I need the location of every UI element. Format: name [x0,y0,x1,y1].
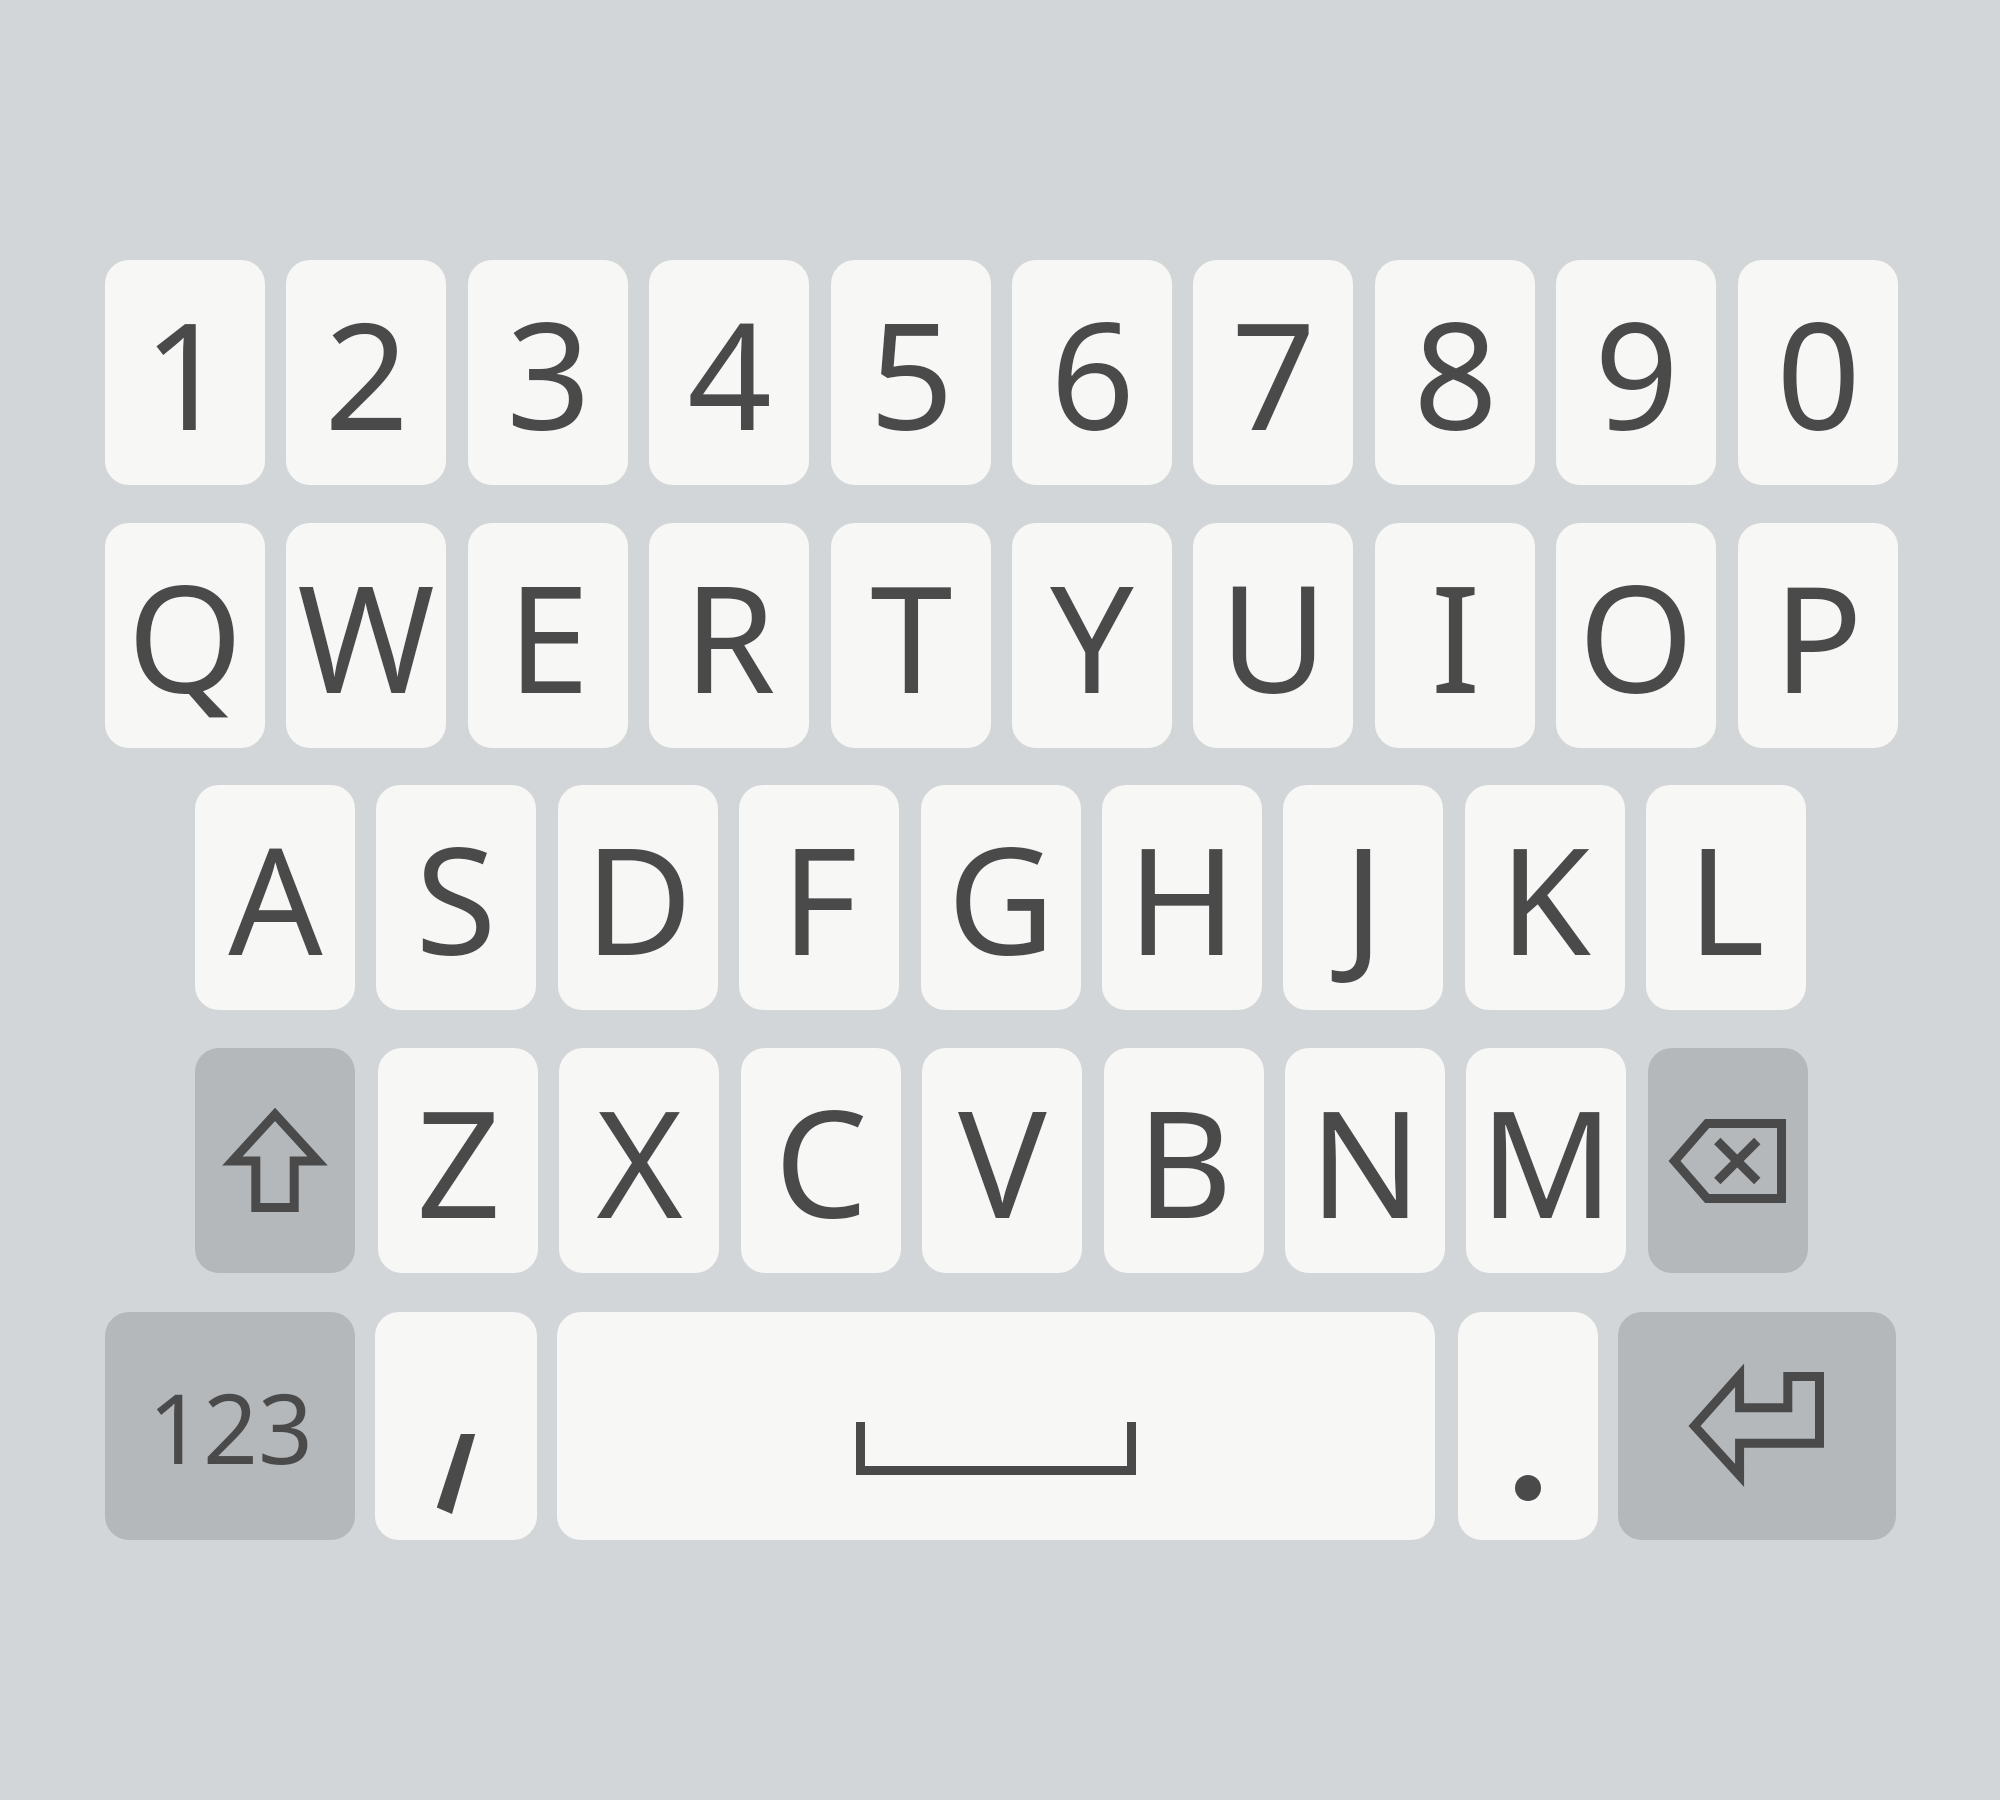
staticText: V [958,1060,1047,1262]
staticText: 123 [148,1361,313,1492]
button[interactable]: K [1465,785,1625,1010]
staticText: H [1127,797,1237,999]
staticText: 4 [687,272,772,474]
button[interactable]: T [831,523,991,748]
button[interactable]: Comma [375,1312,537,1540]
button[interactable]: 0 [1738,260,1898,485]
button[interactable]: I [1375,523,1535,748]
staticText: G [947,797,1055,999]
button[interactable]: Enter [1618,1312,1896,1540]
button[interactable]: 1 [105,260,265,485]
staticText: Y [1050,535,1134,737]
staticText: F [781,797,858,999]
button[interactable]: 123 [105,1312,355,1540]
staticText: U [1219,535,1328,737]
button[interactable]: J [1283,785,1443,1010]
button[interactable]: X [559,1048,719,1273]
staticText: 2 [324,272,409,474]
button[interactable]: 5 [831,260,991,485]
staticText: M [1479,1060,1614,1262]
button[interactable]: Q [105,523,265,748]
staticText: 5 [869,272,954,474]
staticText: K [1499,797,1591,999]
button[interactable]: 9 [1556,260,1716,485]
button[interactable]: Backspace [1648,1048,1808,1273]
staticText: N [1309,1060,1422,1262]
staticText: L [1687,797,1765,999]
button[interactable]: C [741,1048,901,1273]
staticText: Q [127,535,243,737]
staticText: 0 [1776,272,1861,474]
staticText: X [596,1060,683,1262]
staticText: 3 [506,272,591,474]
staticText: B [1136,1060,1233,1262]
staticText: 6 [1050,272,1135,474]
staticText: W [297,535,435,737]
button[interactable]: 7 [1193,260,1353,485]
staticText: J [1343,797,1384,999]
staticText: Z [416,1060,501,1262]
staticText: S [415,797,497,999]
button[interactable]: 4 [649,260,809,485]
button[interactable]: R [649,523,809,748]
staticText: O [1578,535,1694,737]
button[interactable]: 6 [1012,260,1172,485]
button[interactable]: Z [378,1048,538,1273]
button[interactable]: H [1102,785,1262,1010]
button[interactable]: N [1285,1048,1445,1273]
button[interactable]: 2 [286,260,446,485]
button[interactable]: V [922,1048,1082,1273]
button[interactable]: M [1466,1048,1626,1273]
button[interactable]: Space [557,1312,1435,1540]
staticText: T [870,535,953,737]
button[interactable]: P [1738,523,1898,748]
staticText: C [774,1060,868,1262]
button[interactable]: Y [1012,523,1172,748]
button[interactable]: A [195,785,355,1010]
staticText: 7 [1231,272,1316,474]
button[interactable]: O [1556,523,1716,748]
button[interactable]: E [468,523,628,748]
button[interactable]: Period [1458,1312,1598,1540]
button[interactable]: Shift [195,1048,355,1273]
staticText: 8 [1413,272,1498,474]
staticText: E [507,535,590,737]
staticText: D [584,797,693,999]
staticText: R [683,535,776,737]
button[interactable]: 3 [468,260,628,485]
button[interactable]: 8 [1375,260,1535,485]
button[interactable]: L [1646,785,1806,1010]
staticText: 9 [1594,272,1679,474]
button[interactable]: F [739,785,899,1010]
staticText: I [1430,535,1481,737]
button[interactable]: S [376,785,536,1010]
button[interactable]: G [921,785,1081,1010]
button[interactable]: D [558,785,718,1010]
button[interactable]: U [1193,523,1353,748]
staticText: A [228,797,323,999]
button[interactable]: W [286,523,446,748]
staticText: P [1773,535,1863,737]
button[interactable]: B [1104,1048,1264,1273]
staticText: 1 [143,272,228,474]
